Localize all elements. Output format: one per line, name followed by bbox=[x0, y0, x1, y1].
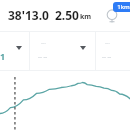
button[interactable] bbox=[0, 71, 130, 130]
button[interactable]: 1 bbox=[0, 32, 29, 70]
staticText: -- -- bbox=[38, 53, 48, 61]
button[interactable]: 1km bbox=[113, 2, 130, 12]
staticText: --- bbox=[41, 40, 46, 47]
staticText: 1 bbox=[0, 50, 6, 62]
staticText: 2.50 bbox=[55, 7, 79, 23]
staticText: -- -- bbox=[102, 53, 112, 61]
button[interactable]: --- bbox=[30, 32, 95, 70]
button[interactable]: 38'13.0 bbox=[0, 0, 130, 31]
staticText: 38'13.0 bbox=[8, 7, 49, 23]
staticText: 1km bbox=[117, 3, 130, 11]
staticText: km bbox=[80, 12, 92, 22]
staticText: --- bbox=[105, 40, 110, 47]
button[interactable]: Map marker bbox=[104, 8, 120, 24]
